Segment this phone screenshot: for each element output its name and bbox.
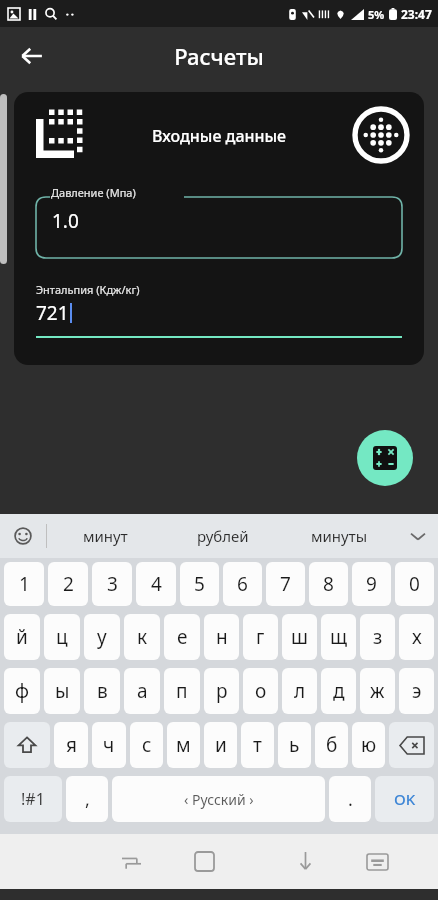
- staticText: ы: [55, 678, 70, 704]
- button[interactable]: ы: [44, 668, 80, 714]
- staticText: а: [137, 678, 148, 704]
- staticText: !#1: [21, 788, 45, 810]
- button[interactable]: 4: [136, 562, 176, 606]
- staticText: ю: [361, 732, 377, 758]
- button[interactable]: л: [282, 668, 317, 714]
- staticText: минут: [83, 526, 128, 546]
- button[interactable]: х: [399, 614, 434, 660]
- button[interactable]: минут: [47, 514, 164, 558]
- button[interactable]: 2: [48, 562, 88, 606]
- button[interactable]: з: [360, 614, 395, 660]
- button[interactable]: Back: [10, 34, 54, 78]
- button[interactable]: п: [164, 668, 200, 714]
- button[interactable]: и: [204, 722, 237, 768]
- button[interactable]: м: [167, 722, 200, 768]
- button[interactable]: Options: [353, 107, 408, 162]
- button[interactable]: OK: [375, 776, 434, 822]
- button[interactable]: ж: [360, 668, 395, 714]
- staticText: 721: [36, 300, 69, 326]
- button[interactable]: рублей: [164, 514, 281, 558]
- staticText: 3: [107, 571, 118, 597]
- button[interactable]: Hide keyboard: [269, 834, 341, 889]
- button[interactable]: ф: [4, 668, 40, 714]
- staticText: ‹ Русский ›: [184, 790, 254, 809]
- button[interactable]: ш: [282, 614, 317, 660]
- staticText: 6: [237, 571, 248, 597]
- button[interactable]: я: [54, 722, 88, 768]
- staticText: о: [255, 678, 267, 704]
- button[interactable]: ь: [278, 722, 311, 768]
- button[interactable]: Emoji: [0, 514, 46, 558]
- staticText: Входные данные: [152, 125, 287, 147]
- staticText: 9: [366, 571, 377, 597]
- staticText: 8: [323, 571, 334, 597]
- staticText: щ: [330, 624, 348, 650]
- button[interactable]: .: [329, 776, 371, 822]
- button[interactable]: !#1: [4, 776, 62, 822]
- button[interactable]: й: [4, 614, 40, 660]
- staticText: э: [412, 678, 422, 704]
- staticText: р: [216, 678, 228, 704]
- staticText: ь: [289, 732, 300, 758]
- staticText: н: [216, 624, 228, 650]
- button[interactable]: е: [164, 614, 200, 660]
- staticText: 1.0: [52, 208, 79, 234]
- button[interactable]: а: [124, 668, 160, 714]
- staticText: ч: [103, 732, 115, 758]
- button[interactable]: 7: [266, 562, 305, 606]
- button[interactable]: Keyboard settings: [341, 834, 413, 889]
- button[interactable]: э: [399, 668, 434, 714]
- button[interactable]: Expand suggestions: [398, 514, 438, 558]
- staticText: 4: [151, 571, 162, 597]
- button[interactable]: г: [243, 614, 278, 660]
- button[interactable]: т: [241, 722, 274, 768]
- button[interactable]: р: [204, 668, 239, 714]
- staticText: 23:47: [401, 6, 432, 22]
- staticText: и: [215, 732, 227, 758]
- staticText: ж: [370, 678, 385, 704]
- button[interactable]: у: [84, 614, 120, 660]
- staticText: 5: [194, 571, 205, 597]
- staticText: Энтальпия (Кдж/кг): [36, 282, 140, 297]
- staticText: к: [137, 624, 148, 650]
- button[interactable]: о: [243, 668, 278, 714]
- button[interactable]: 0: [395, 562, 434, 606]
- button[interactable]: Calculate: [357, 430, 413, 486]
- button[interactable]: 6: [223, 562, 262, 606]
- button[interactable]: ‹ Русский ›: [112, 776, 325, 822]
- staticText: рублей: [197, 526, 249, 546]
- button[interactable]: ц: [44, 614, 80, 660]
- staticText: 1: [19, 571, 30, 597]
- button[interactable]: Backspace: [389, 722, 434, 768]
- staticText: е: [177, 624, 188, 650]
- button[interactable]: 5: [180, 562, 219, 606]
- button[interactable]: ,: [66, 776, 108, 822]
- staticText: ,: [85, 787, 90, 812]
- button[interactable]: 3: [92, 562, 132, 606]
- button[interactable]: с: [130, 722, 163, 768]
- button[interactable]: Recents: [95, 834, 168, 889]
- staticText: ц: [56, 624, 68, 650]
- staticText: ф: [15, 678, 30, 704]
- button[interactable]: Input data: [34, 106, 88, 160]
- button[interactable]: б: [315, 722, 348, 768]
- button[interactable]: д: [321, 668, 356, 714]
- button[interactable]: Shift: [4, 722, 50, 768]
- button[interactable]: минуты: [281, 514, 398, 558]
- staticText: х: [412, 624, 422, 650]
- button[interactable]: в: [84, 668, 120, 714]
- staticText: л: [294, 678, 306, 704]
- button[interactable]: ю: [352, 722, 385, 768]
- button[interactable]: щ: [321, 614, 356, 660]
- staticText: у: [97, 624, 107, 650]
- button[interactable]: к: [124, 614, 160, 660]
- button[interactable]: Давление (Мпа): [36, 188, 402, 258]
- button[interactable]: Home: [168, 834, 240, 889]
- button[interactable]: н: [204, 614, 239, 660]
- button[interactable]: 1: [4, 562, 44, 606]
- staticText: з: [373, 624, 383, 650]
- button[interactable]: 8: [309, 562, 348, 606]
- button[interactable]: ч: [92, 722, 126, 768]
- button[interactable]: 9: [352, 562, 391, 606]
